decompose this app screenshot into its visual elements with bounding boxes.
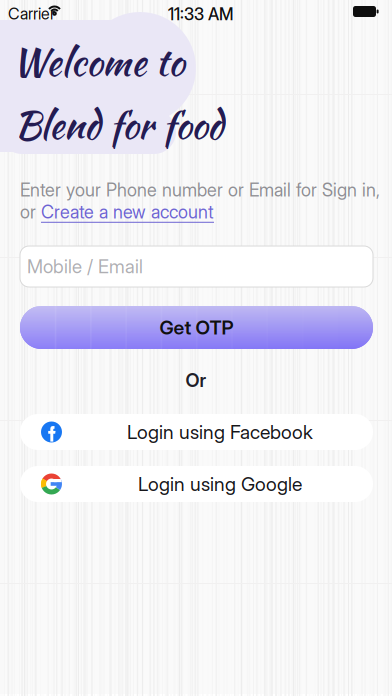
staticText: Login using Facebook (127, 420, 313, 444)
staticText: Enter your Phone number or Email for Sig… (20, 179, 380, 201)
staticText: or (20, 201, 36, 223)
staticText: Carrier (8, 4, 55, 23)
button[interactable]: Login using Facebook (20, 414, 373, 450)
staticText: Create a new account (41, 201, 214, 223)
staticText: Get OTP (159, 316, 233, 339)
staticText: Or (185, 369, 206, 392)
staticText: Login using Google (138, 472, 302, 496)
staticText: Blend for food (14, 98, 223, 152)
button[interactable]: Login using Google (20, 466, 373, 502)
staticText: Mobile / Email (27, 255, 143, 278)
staticText: 11:33 AM (168, 4, 233, 24)
button[interactable]: Create a new account (41, 201, 214, 223)
button[interactable]: Get OTP (20, 306, 373, 349)
staticText: Welcome to (12, 35, 184, 89)
